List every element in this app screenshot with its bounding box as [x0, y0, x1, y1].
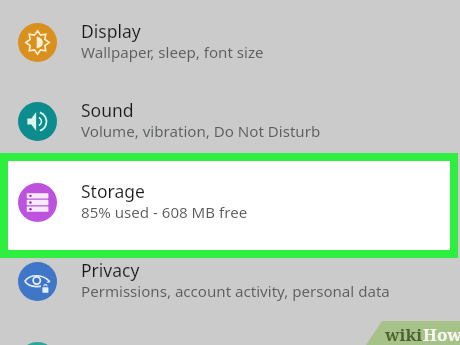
staticText: Sound	[81, 98, 134, 122]
staticText: Volume, vibration, Do Not Disturb	[81, 121, 321, 142]
staticText: Storage	[81, 179, 145, 203]
button[interactable]: Sound	[0, 81, 460, 161]
button[interactable]: Privacy	[0, 241, 460, 321]
staticText: Display	[81, 19, 141, 43]
button[interactable]: Display	[0, 2, 460, 82]
staticText: How	[423, 323, 460, 345]
staticText: 85% used - 608 MB free	[81, 202, 248, 223]
staticText: wiki	[385, 323, 423, 345]
staticText: Privacy	[81, 258, 140, 282]
staticText: Permissions, account activity, personal …	[81, 281, 390, 302]
staticText: Wallpaper, sleep, font size	[81, 42, 264, 63]
button[interactable]: Storage	[0, 162, 460, 242]
